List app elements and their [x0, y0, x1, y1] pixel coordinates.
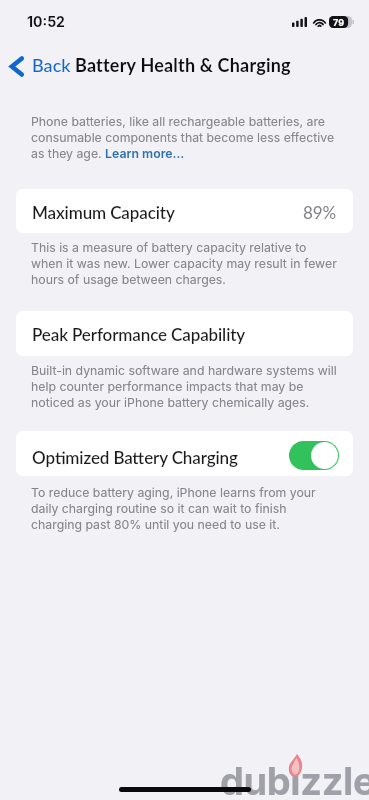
- staticText: Battery Health & Charging: [75, 54, 291, 76]
- staticText: Phone batteries, like all rechargeable b…: [31, 114, 339, 161]
- staticText: Peak Performance Capability: [32, 324, 246, 344]
- staticText: 79: [333, 17, 344, 28]
- staticText: To reduce battery aging, iPhone learns f…: [31, 485, 339, 532]
- button[interactable]: Maximum Capacity: [16, 189, 353, 233]
- staticText: Maximum Capacity: [32, 202, 175, 222]
- staticText: This is a measure of battery capacity re…: [31, 240, 339, 287]
- staticText: Optimized Battery Charging: [32, 447, 238, 467]
- button[interactable]: Back: [9, 52, 71, 80]
- button[interactable]: Peak Performance Capability: [16, 311, 353, 356]
- button[interactable]: Learn more: [105, 146, 184, 161]
- staticText: 10:52: [27, 13, 65, 30]
- staticText: Back: [32, 54, 71, 76]
- button[interactable]: Optimized Battery Charging toggle: [289, 441, 339, 470]
- staticText: Built-in dynamic software and hardware s…: [31, 363, 339, 410]
- staticText: 89%: [303, 202, 337, 222]
- button[interactable]: Optimized Battery Charging: [16, 431, 353, 476]
- staticText: dubizzle: [220, 758, 369, 800]
